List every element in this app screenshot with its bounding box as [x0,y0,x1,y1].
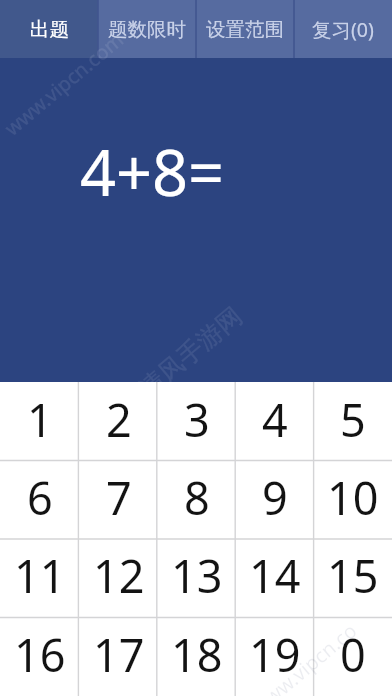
staticText: 复习(0) [312,16,374,43]
staticText: 3 [184,389,210,450]
staticText: 18 [171,624,223,685]
staticText: 8 [184,467,210,528]
staticText: 17 [93,624,145,685]
staticText: 1 [27,389,53,450]
staticText: 6 [27,467,53,528]
staticText: 19 [249,624,301,685]
button[interactable]: 1 [0,382,79,460]
staticText: 设置范围 [206,17,284,42]
staticText: 2 [106,389,132,450]
button[interactable]: 6 [0,460,79,538]
button[interactable]: 17 [79,617,158,696]
button[interactable]: 2 [79,382,158,460]
button[interactable]: 设置范围 [196,0,294,58]
staticText: 5 [340,389,366,450]
button[interactable]: 11 [0,538,79,617]
staticText: 题数限时 [108,17,186,42]
button[interactable]: 14 [236,538,314,617]
button[interactable]: 题数限时 [98,0,196,58]
staticText: 出题 [30,17,69,42]
button[interactable]: 5 [314,382,392,460]
button[interactable]: 3 [158,382,236,460]
button[interactable]: 12 [79,538,158,617]
staticText: www.vipcn.com [0,26,129,141]
staticText: www.vipcn.co [246,617,363,696]
staticText: 16 [14,624,66,685]
staticText: 9 [262,467,288,528]
button[interactable]: 4 [236,382,314,460]
staticText: 14 [249,545,301,606]
button[interactable]: 13 [158,538,236,617]
button[interactable]: 18 [158,617,236,696]
button[interactable]: 19 [236,617,314,696]
button[interactable]: 0 [314,617,392,696]
button[interactable]: 8 [158,460,236,538]
staticText: 4+8= [80,129,225,215]
button[interactable]: 15 [314,538,392,617]
staticText: 11 [14,545,66,606]
staticText: 0 [340,624,366,685]
staticText: 4 [262,389,288,450]
button[interactable]: 16 [0,617,79,696]
staticText: 13 [171,545,223,606]
staticText: 12 [93,545,145,606]
staticText: 清风手游网 [133,300,248,405]
staticText: 7 [106,467,132,528]
staticText: 10 [327,467,379,528]
button[interactable]: 10 [314,460,392,538]
button[interactable]: 7 [79,460,158,538]
button[interactable]: 9 [236,460,314,538]
button[interactable]: 复习(0) [294,0,392,58]
button[interactable]: 出题 [0,0,98,58]
staticText: 15 [327,545,379,606]
